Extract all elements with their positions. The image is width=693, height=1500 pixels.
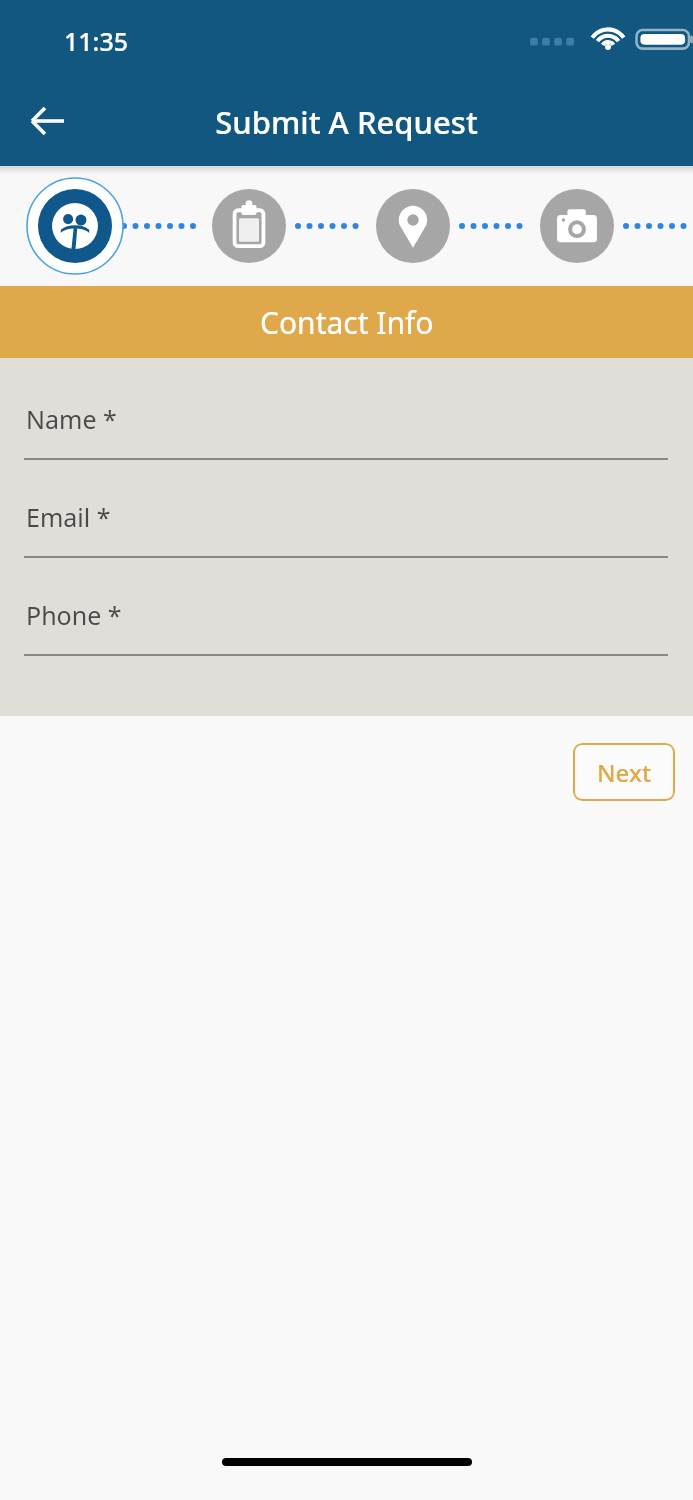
button[interactable]: Contact info step (31, 178, 119, 274)
button[interactable]: Phone * (0, 598, 693, 656)
button[interactable]: Photo step (533, 178, 621, 274)
staticText: Next (597, 756, 652, 789)
button[interactable]: Details step (205, 178, 293, 274)
staticText: Email * (26, 500, 111, 534)
button[interactable]: Location step (369, 178, 457, 274)
staticText: Name * (26, 402, 117, 436)
staticText: 11:35 (64, 24, 129, 58)
button[interactable]: Back (18, 92, 76, 150)
button[interactable]: Name * (0, 402, 693, 460)
staticText: Phone * (26, 598, 122, 632)
staticText: Contact Info (260, 302, 434, 343)
staticText: Submit A Request (0, 101, 693, 143)
button[interactable]: Email * (0, 500, 693, 558)
button[interactable]: Next (573, 743, 675, 801)
